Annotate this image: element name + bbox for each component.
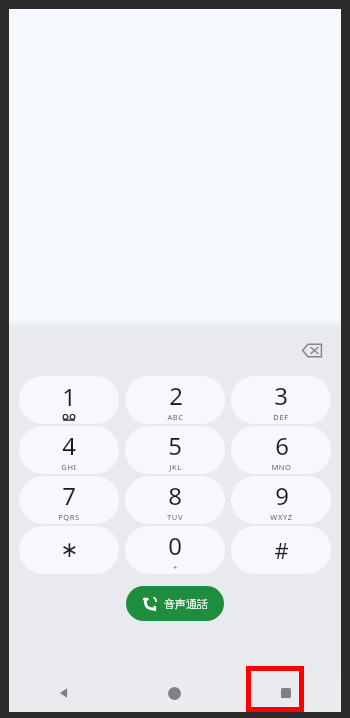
staticText: 7: [62, 479, 76, 512]
staticText: 5: [168, 429, 182, 462]
staticText: 3: [274, 379, 288, 412]
staticText: 音声通話: [164, 597, 208, 611]
staticText: 0: [168, 529, 182, 562]
staticText: WXYZ: [270, 512, 293, 522]
button[interactable]: 5: [125, 426, 225, 474]
button[interactable]: 7: [19, 476, 119, 524]
button[interactable]: 9: [231, 476, 331, 524]
staticText: #: [274, 535, 289, 565]
button[interactable]: 6: [231, 426, 331, 474]
button[interactable]: 2: [125, 376, 225, 424]
staticText: GHI: [61, 462, 77, 472]
button[interactable]: 8: [125, 476, 225, 524]
staticText: DEF: [273, 412, 289, 422]
staticText: 9: [275, 479, 289, 512]
staticText: TUV: [167, 512, 183, 522]
button[interactable]: Recent apps: [230, 674, 341, 712]
staticText: PQRS: [58, 512, 80, 522]
button[interactable]: 1: [19, 376, 119, 424]
button[interactable]: Home: [119, 674, 230, 712]
staticText: +: [173, 562, 178, 572]
staticText: ∗: [60, 537, 79, 563]
staticText: 8: [168, 479, 182, 512]
button[interactable]: ∗: [19, 526, 119, 574]
button[interactable]: Delete: [295, 333, 329, 367]
button[interactable]: 4: [19, 426, 119, 474]
button[interactable]: 3: [231, 376, 331, 424]
staticText: JKL: [169, 462, 182, 472]
button[interactable]: 音声通話: [126, 586, 224, 621]
staticText: 2: [169, 379, 183, 412]
button[interactable]: Back: [9, 674, 119, 712]
staticText: 4: [62, 429, 76, 462]
staticText: 1: [62, 380, 76, 413]
button[interactable]: #: [231, 526, 331, 574]
staticText: MNO: [271, 462, 292, 472]
button[interactable]: 0: [125, 526, 225, 574]
staticText: 6: [275, 429, 289, 462]
staticText: ABC: [167, 412, 184, 422]
